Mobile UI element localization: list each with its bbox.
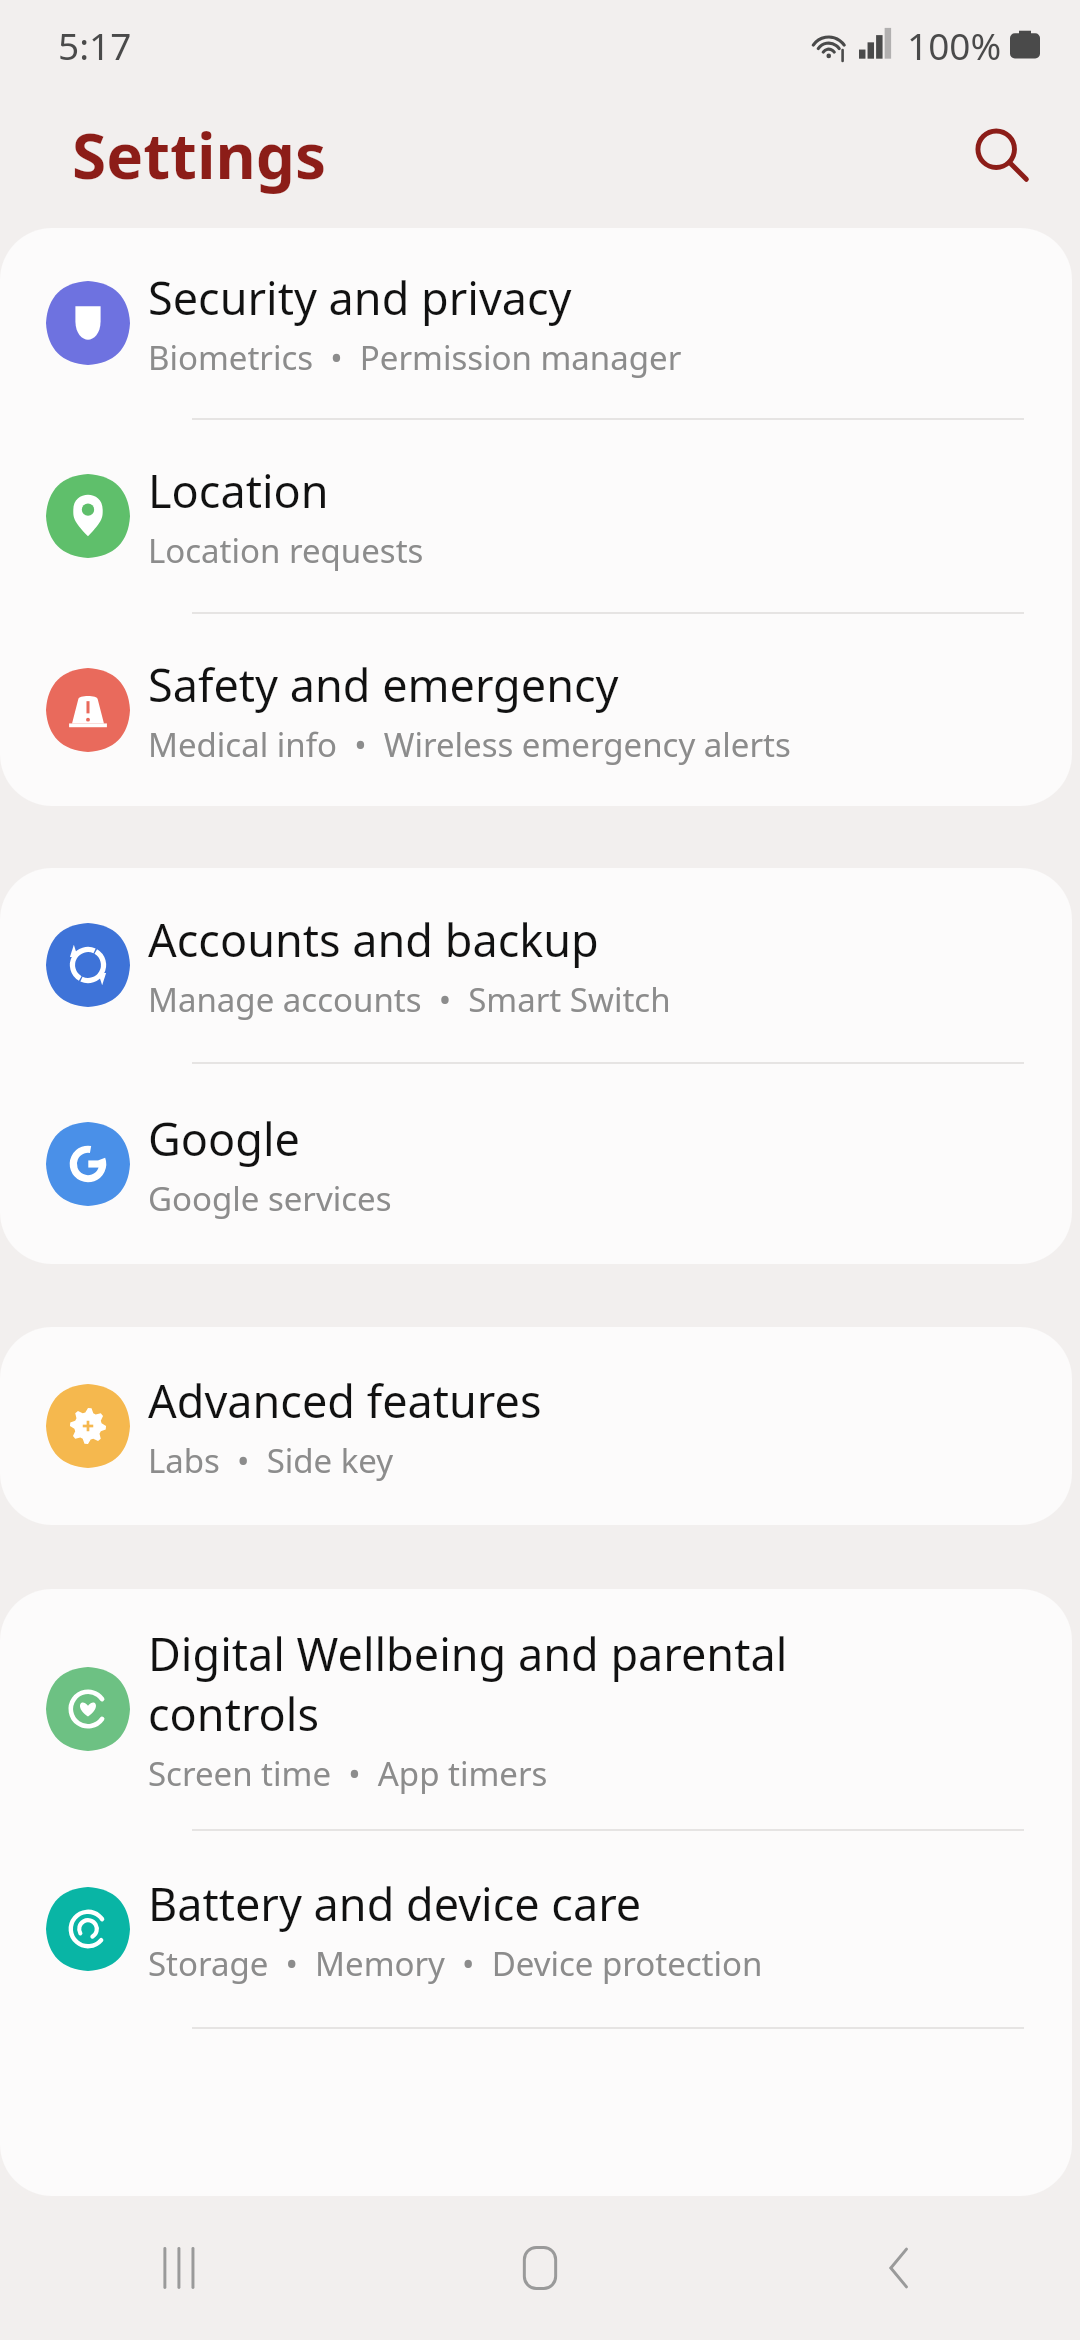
button[interactable]: Home — [475, 2203, 605, 2333]
button[interactable]: Search — [954, 107, 1050, 203]
staticText: Location — [148, 460, 329, 521]
button[interactable]: Recent apps — [115, 2203, 245, 2333]
staticText: Security and privacy — [148, 267, 572, 328]
staticText: Safety and emergency — [148, 654, 619, 715]
staticText: 100% — [907, 20, 1002, 70]
staticText: Location requests — [148, 528, 424, 573]
staticText: Settings — [72, 113, 327, 197]
button[interactable]: Battery and device care — [0, 1831, 1072, 2027]
staticText: Manage accounts • Smart Switch — [148, 977, 671, 1022]
staticText: Storage • Memory • Device protection — [148, 1941, 763, 1986]
button[interactable]: Safety and emergency — [0, 614, 1072, 806]
staticText: Labs • Side key — [148, 1438, 394, 1483]
staticText: Advanced features — [148, 1370, 542, 1431]
button[interactable]: Advanced features — [0, 1327, 1072, 1525]
button[interactable]: Google — [0, 1064, 1072, 1264]
staticText: 5:17 — [58, 20, 132, 70]
staticText: Screen time • App timers — [148, 1751, 548, 1796]
staticText: Battery and device care — [148, 1873, 642, 1934]
staticText: Medical info • Wireless emergency alerts — [148, 722, 791, 767]
button[interactable]: Security and privacy — [0, 228, 1072, 418]
staticText: Biometrics • Permission manager — [148, 335, 682, 380]
staticText: Accounts and backup — [148, 909, 599, 970]
staticText: Google — [148, 1108, 300, 1169]
button[interactable]: Digital Wellbeing and parental controls — [0, 1589, 1072, 1829]
button[interactable]: Accounts and backup — [0, 868, 1072, 1062]
button[interactable]: Location — [0, 420, 1072, 612]
staticText: Google services — [148, 1176, 392, 1221]
button[interactable]: Back — [835, 2203, 965, 2333]
staticText: Digital Wellbeing and parental controls — [148, 1623, 788, 1744]
